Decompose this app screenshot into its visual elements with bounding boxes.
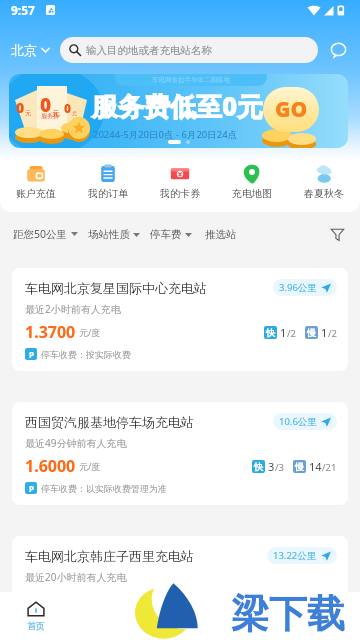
staticText: 元 — [25, 109, 31, 117]
button[interactable]: 我的订单 — [77, 164, 139, 200]
staticText: 推选站 — [205, 228, 237, 241]
staticText: 3.96公里 — [279, 281, 317, 294]
staticText: /2 — [328, 327, 337, 340]
staticText: 20244-5月20日0点 - 6月20日24点 — [93, 128, 238, 141]
staticText: /3 — [275, 461, 284, 474]
staticText: /2 — [287, 327, 296, 340]
staticText: 1.6000 — [25, 455, 76, 477]
staticText: 梁下载 — [231, 590, 345, 638]
staticText: 停车费 — [150, 228, 182, 241]
staticText: 充电地图 — [232, 187, 272, 200]
staticText: 最近20小时前有人充电 — [25, 570, 127, 584]
staticText: 服务费 — [41, 112, 59, 120]
staticText: 1.5000 — [25, 589, 76, 611]
staticText: /2 — [287, 595, 296, 608]
button[interactable]: 充电地图 — [221, 164, 283, 200]
staticText: 场站性质 — [88, 228, 130, 241]
staticText: 快 — [266, 595, 275, 606]
staticText: P — [29, 483, 34, 494]
staticText: GO — [275, 95, 308, 124]
staticText: P — [29, 349, 34, 360]
staticText: 最近49分钟前有人充电 — [25, 436, 127, 450]
staticText: 我的订单 — [88, 187, 128, 200]
button[interactable]: 筛选 — [326, 223, 348, 245]
staticText: 我的卡券 — [160, 187, 200, 200]
staticText: 北京 — [11, 42, 37, 58]
staticText: 3 — [268, 459, 275, 474]
staticText: 车电网北京韩庄子西里充电站 — [25, 548, 194, 564]
staticText: 0 — [16, 98, 25, 117]
button[interactable]: 消息 — [326, 38, 350, 62]
staticText: 0 — [40, 92, 52, 118]
staticText: 13.22公里 — [273, 549, 317, 562]
staticText: 4 — [321, 593, 328, 608]
button[interactable]: 距您50公里 — [13, 227, 78, 241]
staticText: 输入目的地或者充电站名称 — [86, 44, 212, 57]
button[interactable]: 北京 — [11, 38, 50, 62]
staticText: 1.3700 — [25, 321, 76, 343]
staticText: 元/度 — [79, 326, 101, 338]
button[interactable]: 车电网北京韩庄子西里充电站 — [12, 536, 348, 639]
staticText: 西国贸汽服基地停车场充电站 — [25, 414, 194, 430]
staticText: 停车收费：按实际收费 — [41, 349, 131, 360]
staticText: 车电网北京复星国际中心充电站 — [25, 280, 207, 296]
staticText: 14 — [309, 459, 322, 474]
staticText: 快 — [254, 461, 263, 472]
staticText: 春夏秋冬 — [304, 187, 344, 200]
staticText: 最近2小时前有人充电 — [25, 302, 121, 316]
staticText: 车电网首批半导体二期落地 — [152, 76, 230, 84]
button[interactable]: 场站性质 — [88, 228, 140, 241]
staticText: 2 — [280, 593, 287, 608]
staticText: 距您50公里 — [13, 227, 68, 241]
staticText: 慢 — [307, 595, 316, 606]
staticText: 慢 — [295, 461, 304, 472]
button[interactable]: 输入目的地或者充电站名称 — [60, 37, 318, 63]
staticText: 1 — [321, 325, 328, 340]
button[interactable]: 首页 — [0, 601, 72, 631]
button[interactable]: 春夏秋冬 — [293, 164, 355, 200]
staticText: 停车收费：以实际收费管理为准 — [41, 483, 167, 494]
staticText: 账户充值 — [16, 187, 56, 200]
staticText: 1 — [280, 325, 287, 340]
button[interactable]: 我的卡券 — [149, 164, 211, 200]
staticText: 停车收费：按实际收费 — [41, 617, 131, 628]
staticText: 0 — [64, 100, 72, 116]
staticText: /8 — [328, 595, 337, 608]
staticText: 首页 — [27, 620, 45, 631]
button[interactable]: 账户充值 — [5, 164, 67, 200]
button[interactable]: 停车费 — [150, 228, 192, 241]
staticText: P — [29, 617, 34, 628]
button[interactable]: 车电网北京复星国际中心充电站 — [12, 268, 348, 371]
staticText: 慢 — [307, 327, 316, 338]
staticText: 服务费低至0元 — [92, 88, 264, 124]
button[interactable]: 推选站 — [205, 228, 237, 241]
staticText: 元/度 — [79, 460, 101, 472]
button[interactable]: 车电网首批半导体二期落地 — [9, 74, 348, 148]
staticText: 元 — [52, 108, 60, 118]
staticText: 9:57 — [11, 2, 35, 18]
button[interactable]: 西国贸汽服基地停车场充电站 — [12, 402, 348, 505]
staticText: 元 — [72, 110, 77, 116]
staticText: 10.6公里 — [279, 415, 317, 428]
staticText: /21 — [322, 461, 337, 474]
staticText: 快 — [266, 327, 275, 338]
